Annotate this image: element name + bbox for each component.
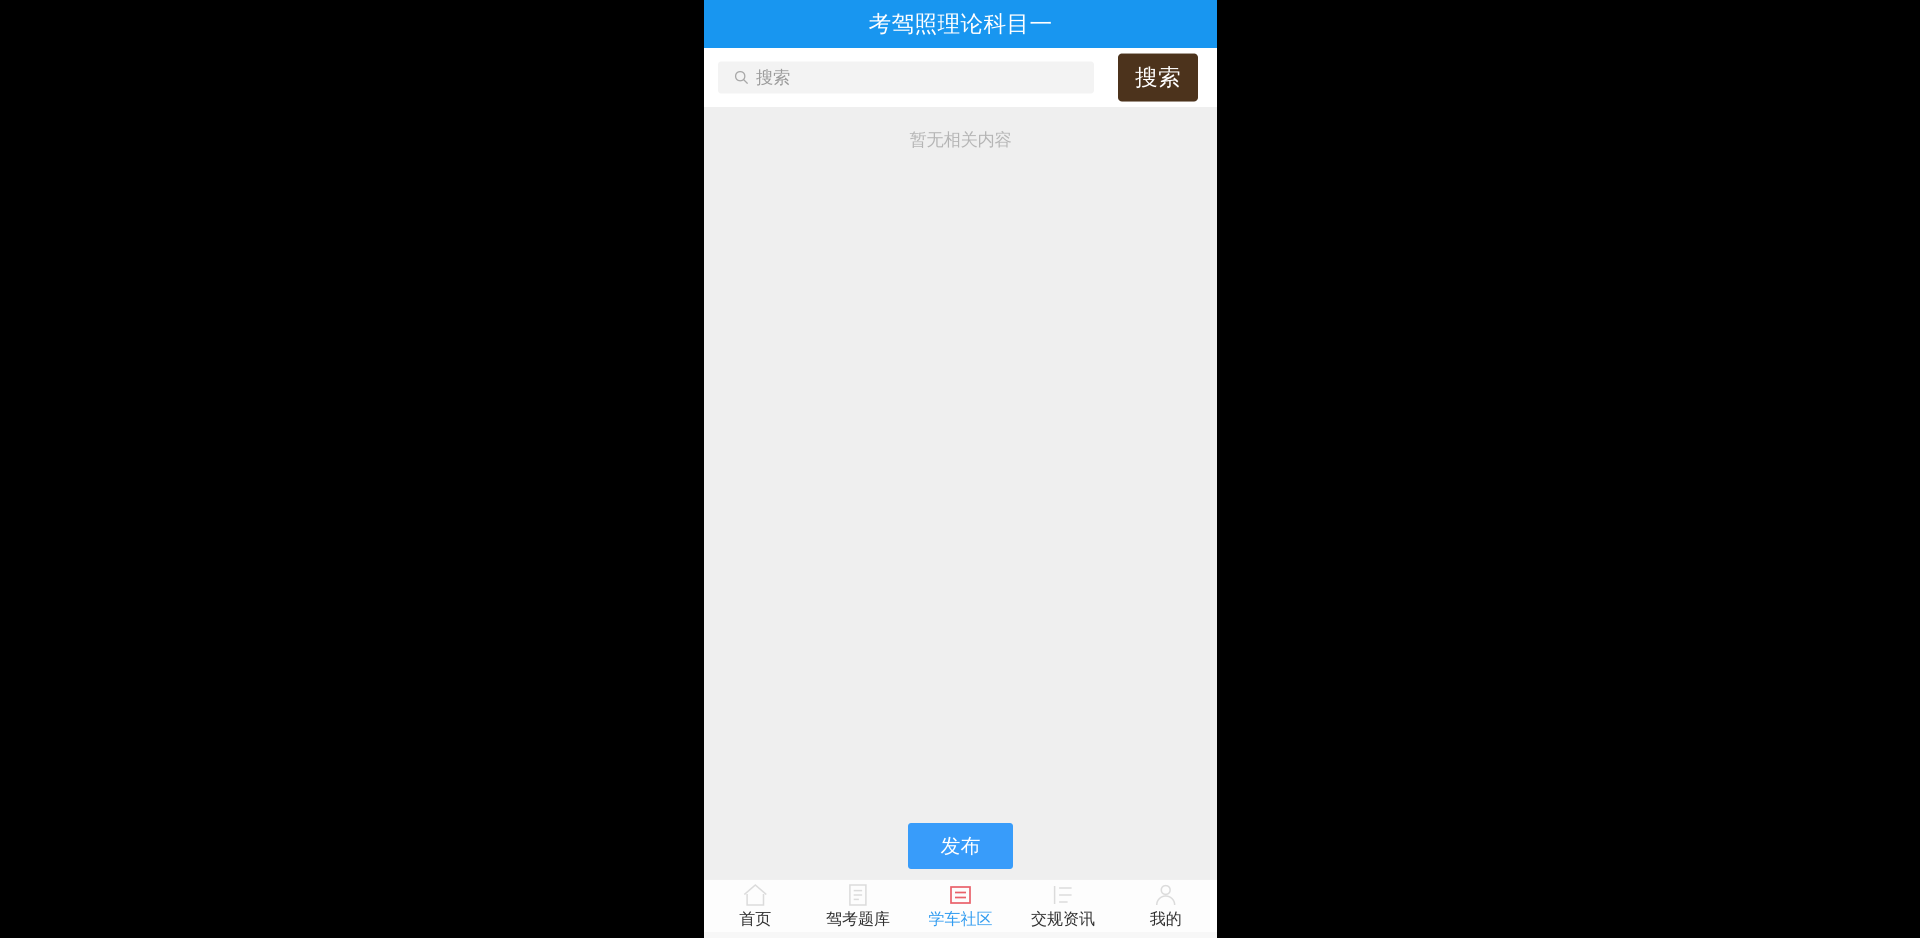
staticText: 驾考题库 <box>826 909 890 929</box>
staticText: 搜索 <box>1135 64 1181 91</box>
staticText: 暂无相关内容 <box>909 129 1011 150</box>
staticText: 搜索 <box>756 67 790 88</box>
button[interactable]: 搜索 <box>1118 53 1198 101</box>
button[interactable]: 发布 <box>908 823 1013 869</box>
staticText: 首页 <box>739 909 771 929</box>
button[interactable]: 首页 <box>704 880 807 932</box>
staticText: 学车社区 <box>928 909 992 929</box>
button[interactable]: 搜索 <box>718 61 1094 93</box>
button[interactable]: 我的 <box>1114 880 1217 932</box>
staticText: 发布 <box>940 834 980 858</box>
button[interactable]: 驾考题库 <box>807 880 909 932</box>
staticText: 我的 <box>1150 909 1182 929</box>
button[interactable]: 交规资讯 <box>1012 880 1114 932</box>
staticText: 考驾照理论科目一 <box>868 10 1052 38</box>
staticText: 交规资讯 <box>1031 909 1095 929</box>
button[interactable]: 学车社区 <box>909 880 1012 932</box>
